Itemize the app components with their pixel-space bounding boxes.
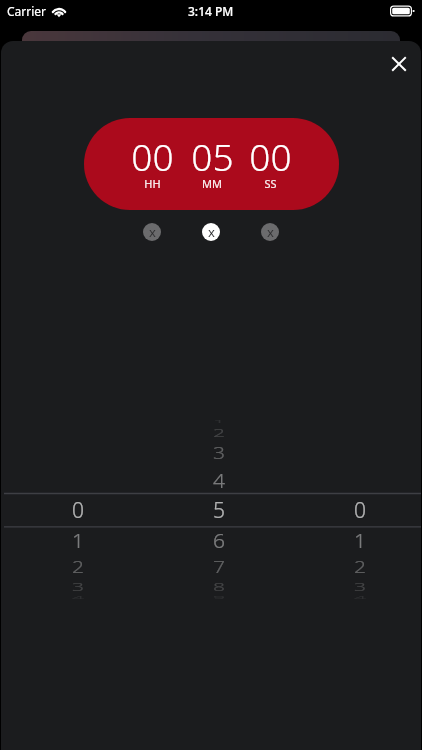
staticText: 9 [213, 596, 225, 600]
staticText: 4 [213, 467, 225, 493]
staticText: 7 [213, 556, 225, 578]
button[interactable]: Close [377, 42, 421, 86]
staticText: 5 [213, 496, 225, 524]
staticText: 1 [354, 527, 366, 553]
staticText: 6 [213, 527, 225, 553]
button[interactable]: Clear field [143, 223, 161, 241]
staticText: MM [202, 176, 222, 191]
staticText: x [267, 223, 274, 241]
staticText: HH [144, 176, 161, 191]
staticText: x [208, 223, 215, 241]
staticText: 8 [213, 580, 225, 594]
staticText: 4 [354, 596, 366, 600]
staticText: Carrier [7, 3, 47, 19]
staticText: 2 [72, 556, 84, 578]
staticText: 4 [72, 596, 84, 600]
staticText: 1 [213, 420, 225, 424]
staticText: 00 [249, 131, 292, 181]
staticText: 3 [354, 580, 366, 594]
staticText: 2 [213, 426, 225, 440]
button[interactable]: Clear field [261, 223, 279, 241]
button[interactable]: Timer 00 hours 05 minutes 00 seconds [84, 118, 339, 210]
staticText: SS [264, 176, 277, 191]
staticText: 05 [191, 131, 234, 181]
staticText: x [149, 223, 156, 241]
staticText: 3 [72, 580, 84, 594]
button[interactable]: 5 minutes [189, 407, 249, 613]
staticText: 3 [213, 442, 225, 464]
staticText: 0 [354, 496, 366, 524]
staticText: 1 [72, 527, 84, 553]
button[interactable]: 0 hours [48, 407, 108, 613]
button[interactable]: 0 seconds [330, 407, 390, 613]
staticText: 00 [131, 131, 174, 181]
button[interactable]: Clear field [202, 223, 220, 241]
staticText: 2 [354, 556, 366, 578]
staticText: 0 [72, 496, 84, 524]
staticText: 3:14 PM [188, 3, 234, 19]
